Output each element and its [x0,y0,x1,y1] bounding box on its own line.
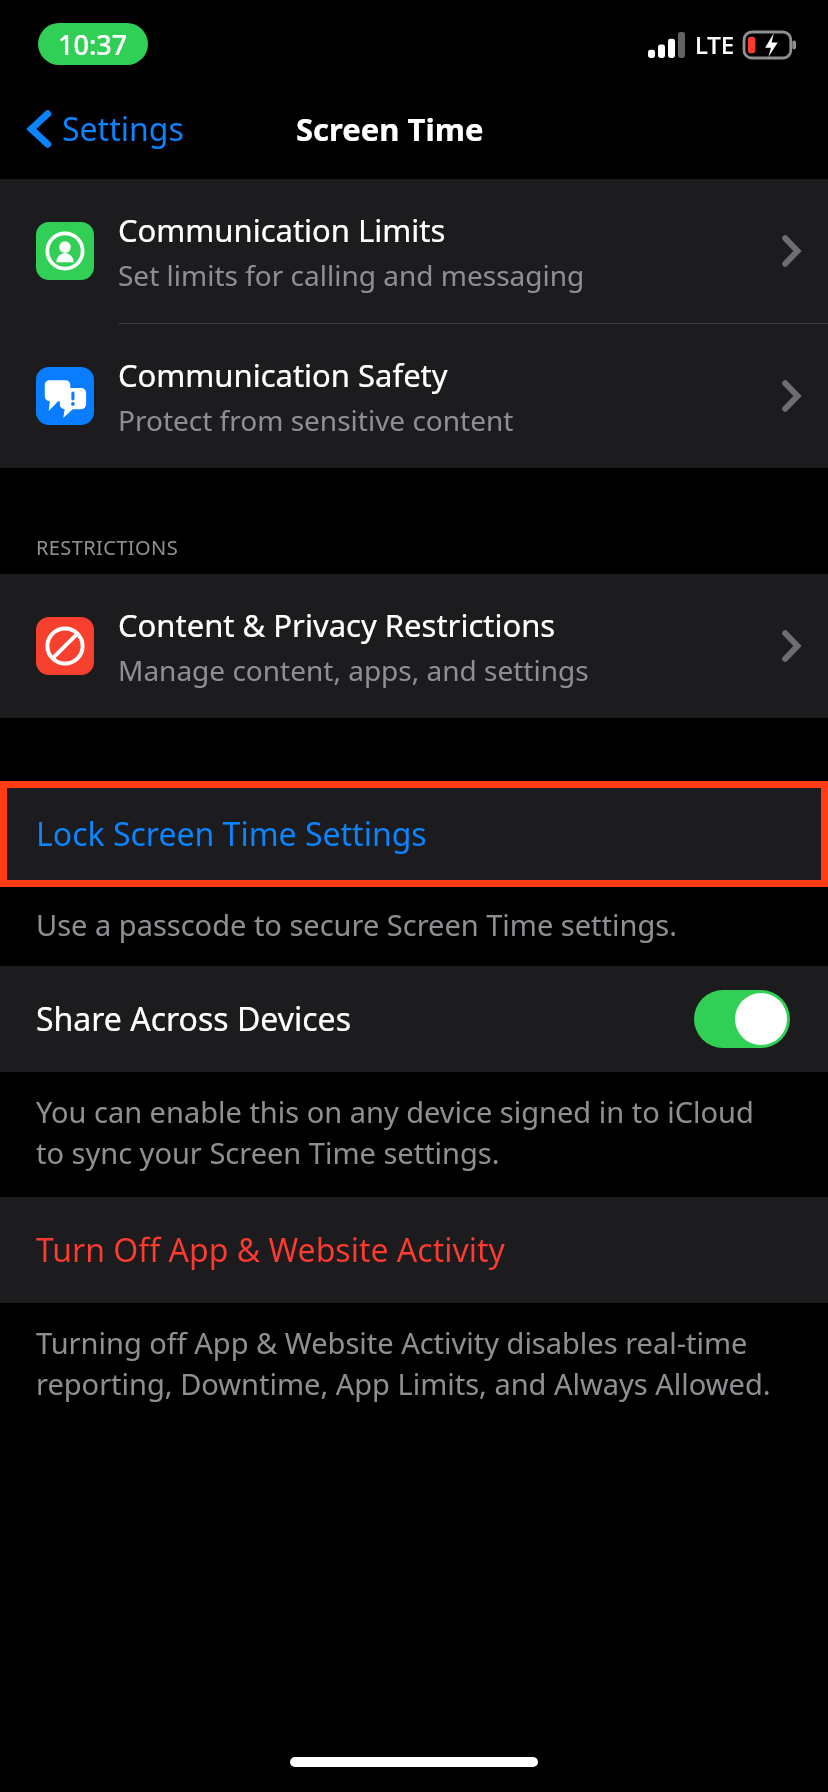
staticText: Lock Screen Time Settings [36,812,427,856]
staticText: Manage content, apps, and settings [118,651,589,689]
staticText: You can enable this on any device signed… [36,1092,788,1173]
button[interactable]: Content & Privacy Restrictions [0,574,828,718]
staticText: Set limits for calling and messaging [118,256,585,294]
staticText: Share Across Devices [36,997,694,1041]
staticText: Screen Time [296,108,484,150]
staticText: Communication Safety [118,354,448,396]
staticText: Turn Off App & Website Activity [36,1228,505,1272]
button[interactable]: Communication Safety [0,324,828,468]
button[interactable]: Turn Off App & Website Activity [0,1197,828,1303]
staticText: Protect from sensitive content [118,401,514,439]
button[interactable]: Share Across Devices [0,966,828,1072]
button[interactable]: Lock Screen Time Settings [7,788,821,880]
staticText: RESTRICTIONS [36,534,179,561]
button[interactable]: Settings [22,101,190,157]
staticText: Settings [62,107,184,151]
button[interactable]: Communication Limits [0,179,828,324]
staticText: Use a passcode to secure Screen Time set… [36,905,677,944]
staticText: LTE [695,28,735,61]
staticText: 10:37 [58,26,128,63]
staticText: Communication Limits [118,209,446,251]
staticText: Content & Privacy Restrictions [118,604,556,646]
staticText: Turning off App & Website Activity disab… [36,1323,788,1404]
